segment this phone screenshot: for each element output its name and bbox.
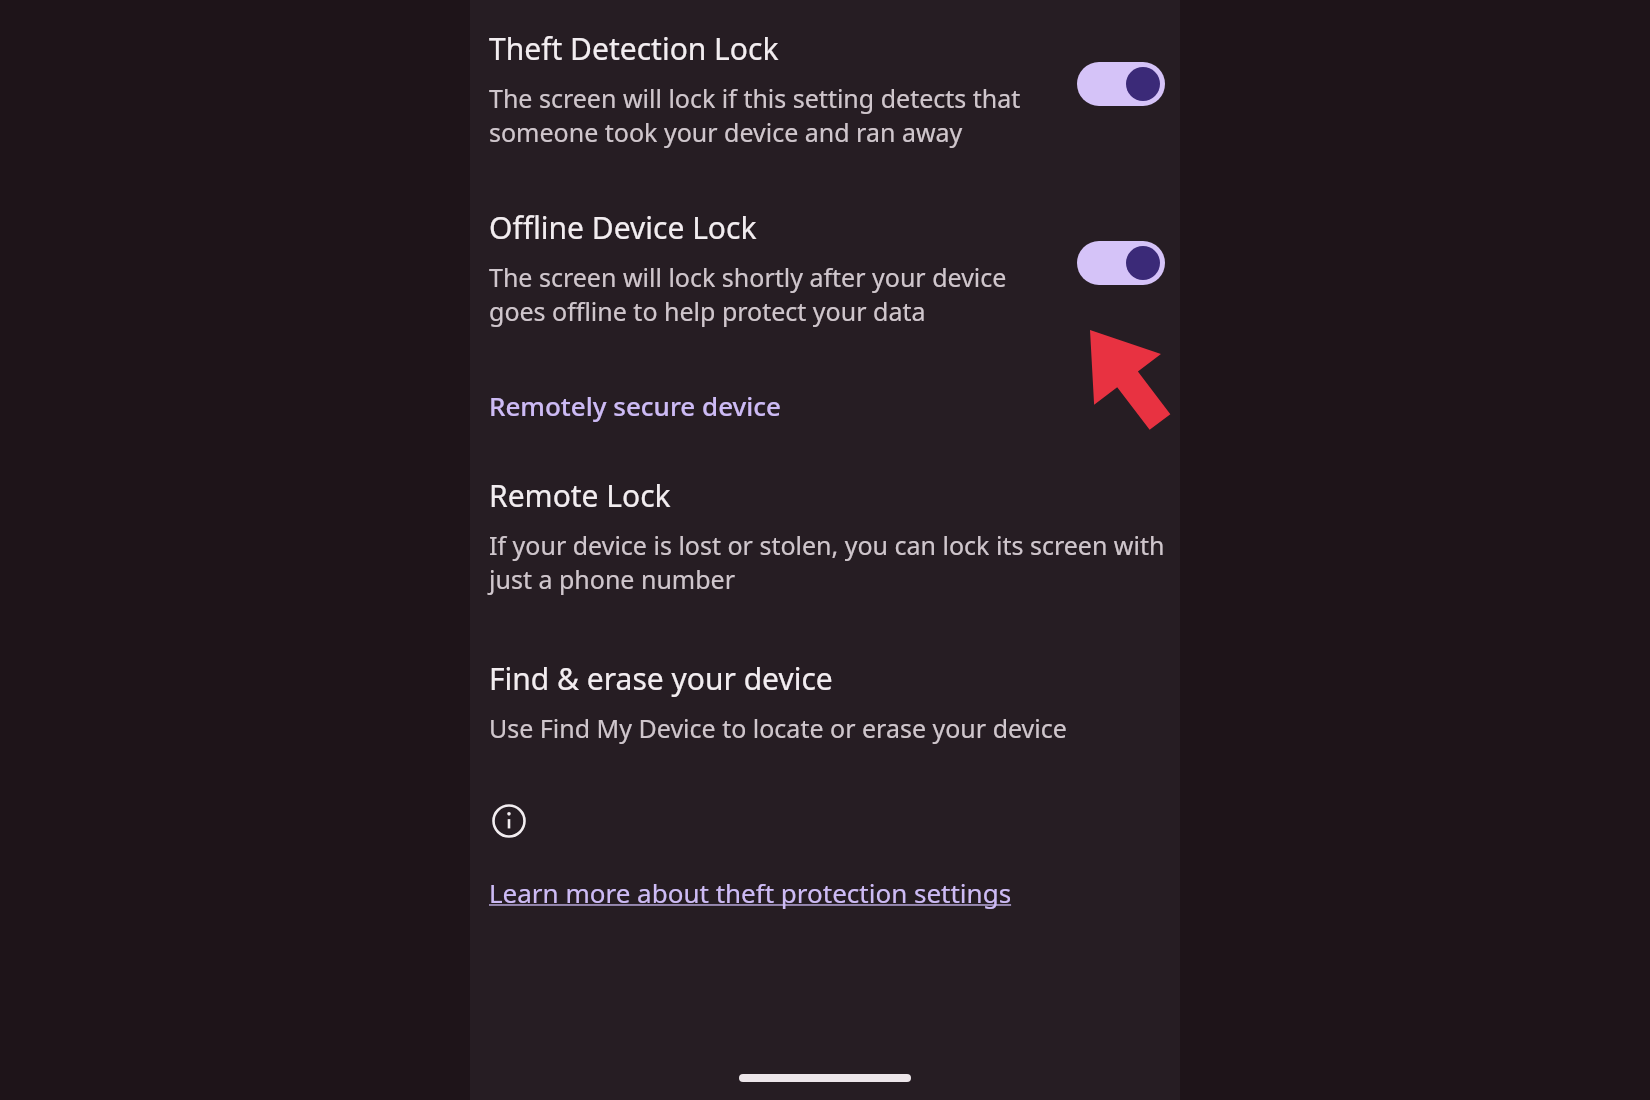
staticText: Find & erase your device <box>489 658 833 699</box>
staticText: Offline Device Lock <box>489 207 757 248</box>
button[interactable]: Offline Device Lock toggle, on <box>1077 241 1165 285</box>
staticText: Remote Lock <box>489 475 671 516</box>
staticText: Learn more about theft protection settin… <box>489 875 1012 910</box>
staticText: If your device is lost or stolen, you ca… <box>489 528 1165 596</box>
button[interactable]: Offline Device Lock <box>489 207 1165 328</box>
button[interactable]: Remote Lock <box>489 475 1165 596</box>
staticText: Use Find My Device to locate or erase yo… <box>489 711 1067 745</box>
staticText: The screen will lock shortly after your … <box>489 260 1053 328</box>
button[interactable]: Learn more about theft protection settin… <box>489 875 1012 910</box>
staticText: Theft Detection Lock <box>489 28 779 69</box>
staticText: The screen will lock if this setting det… <box>489 81 1053 149</box>
button[interactable]: Information <box>489 801 529 841</box>
button[interactable]: Theft Detection Lock toggle, on <box>1077 62 1165 106</box>
button[interactable]: Remotely secure device <box>489 388 781 423</box>
button[interactable]: Find & erase your device <box>489 658 1165 745</box>
staticText: Remotely secure device <box>489 388 781 423</box>
button[interactable]: Theft Detection Lock <box>489 28 1165 149</box>
